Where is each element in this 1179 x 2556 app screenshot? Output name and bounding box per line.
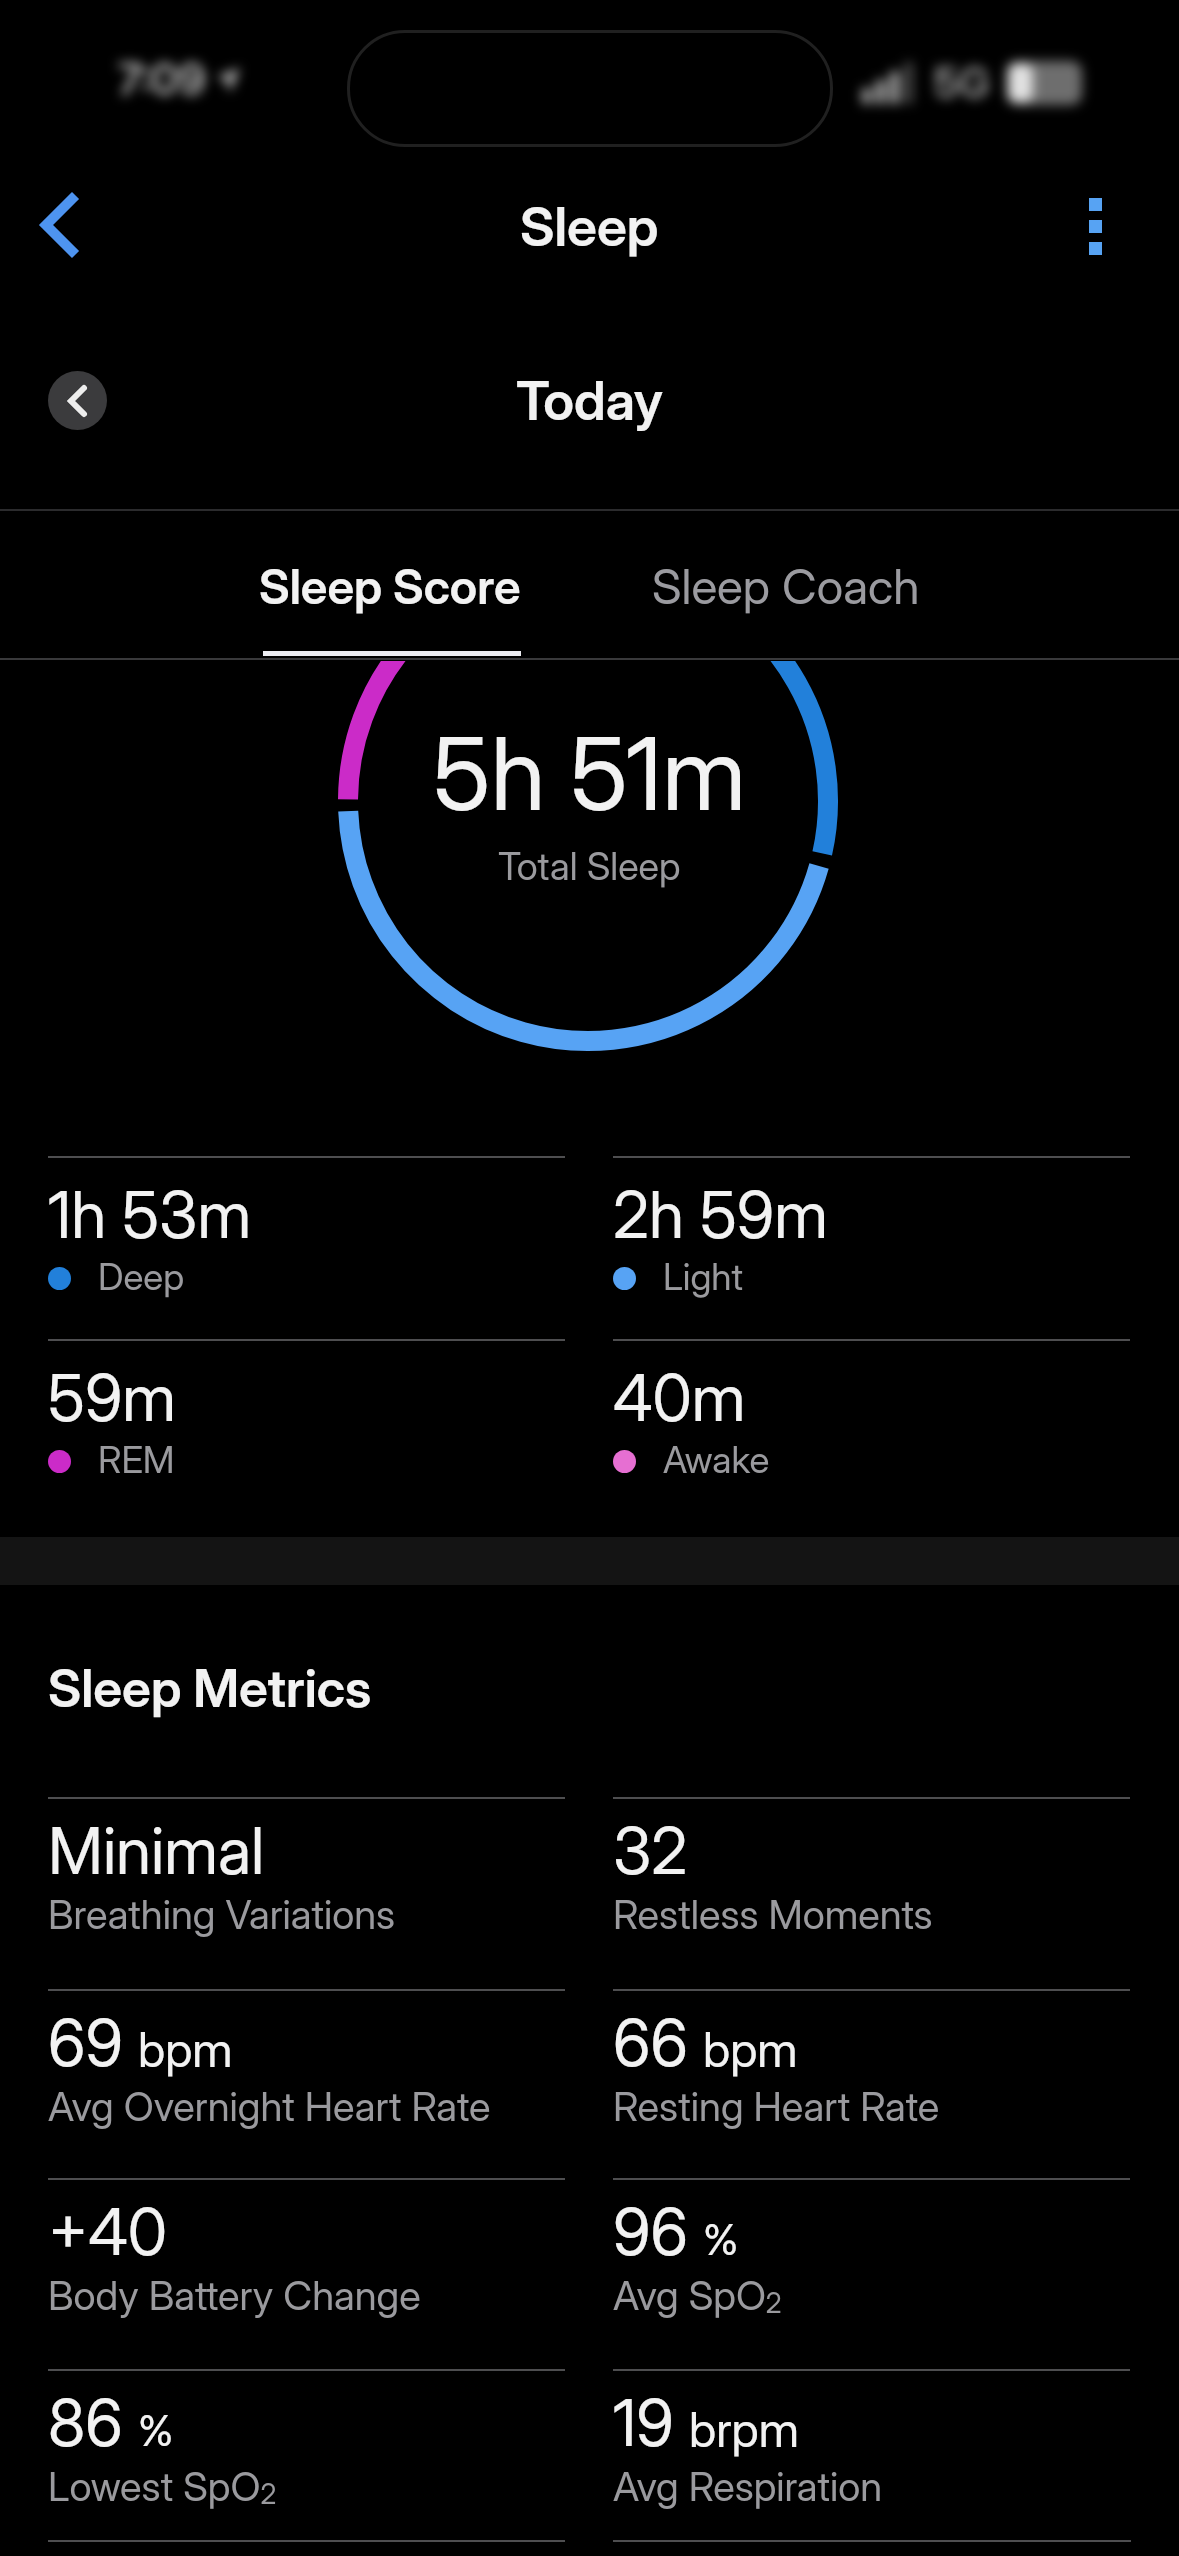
button[interactable]: 32: [613, 1797, 1131, 1977]
staticText: 32: [613, 1812, 688, 1889]
button[interactable]: 69: [48, 1989, 566, 2169]
staticText: 5h 51m: [433, 713, 747, 834]
staticText: Sleep Coach: [652, 557, 920, 615]
button[interactable]: Minimal: [48, 1797, 566, 1977]
staticText: bpm: [138, 2020, 233, 2078]
button[interactable]: 1h 53m: [48, 1156, 566, 1326]
button[interactable]: 86: [48, 2369, 566, 2549]
button[interactable]: [24, 180, 94, 270]
button[interactable]: +40: [48, 2178, 566, 2358]
button[interactable]: Sleep Score: [240, 520, 540, 652]
button[interactable]: [48, 371, 107, 430]
button[interactable]: 40m: [613, 1339, 1131, 1509]
staticText: Deep: [98, 1254, 185, 1299]
button[interactable]: 59m: [48, 1339, 566, 1509]
staticText: 96: [613, 2193, 688, 2270]
staticText: 1h 53m: [48, 1176, 252, 1253]
staticText: Minimal: [48, 1812, 265, 1889]
button[interactable]: 2h 59m: [613, 1156, 1131, 1326]
staticText: 19: [613, 2384, 674, 2461]
staticText: 40m: [613, 1359, 746, 1436]
staticText: Lowest SpO2: [48, 2462, 277, 2511]
staticText: Avg SpO2: [613, 2271, 782, 2320]
staticText: Sleep Metrics: [48, 1657, 372, 1720]
staticText: bpm: [703, 2020, 798, 2078]
staticText: 7:09: [118, 52, 206, 105]
staticText: Avg Respiration: [613, 2462, 883, 2510]
staticText: Sleep: [520, 194, 659, 259]
staticText: %: [703, 2214, 739, 2265]
staticText: 86: [48, 2384, 123, 2461]
button[interactable]: 19: [613, 2369, 1131, 2549]
button[interactable]: 66: [613, 1989, 1131, 2169]
staticText: Restless Moments: [613, 1890, 933, 1938]
staticText: Body Battery Change: [48, 2271, 421, 2319]
button[interactable]: 96: [613, 2178, 1131, 2358]
staticText: 2h 59m: [613, 1176, 828, 1253]
staticText: Breathing Variations: [48, 1890, 396, 1938]
staticText: 69: [48, 2004, 123, 2081]
staticText: 66: [613, 2004, 688, 2081]
staticText: 59m: [48, 1359, 176, 1436]
staticText: Total Sleep: [498, 843, 681, 889]
staticText: REM: [98, 1437, 175, 1482]
staticText: %: [138, 2405, 174, 2456]
staticText: brpm: [689, 2400, 800, 2458]
staticText: Sleep Score: [259, 557, 521, 615]
staticText: +40: [48, 2193, 167, 2270]
staticText: Awake: [663, 1437, 770, 1482]
button[interactable]: [1070, 198, 1120, 268]
staticText: Avg Overnight Heart Rate: [48, 2082, 491, 2130]
staticText: Light: [663, 1254, 744, 1299]
staticText: 5G: [934, 57, 990, 108]
staticText: Today: [516, 368, 663, 433]
button[interactable]: Sleep Coach: [636, 520, 936, 652]
staticText: Resting Heart Rate: [613, 2082, 940, 2130]
